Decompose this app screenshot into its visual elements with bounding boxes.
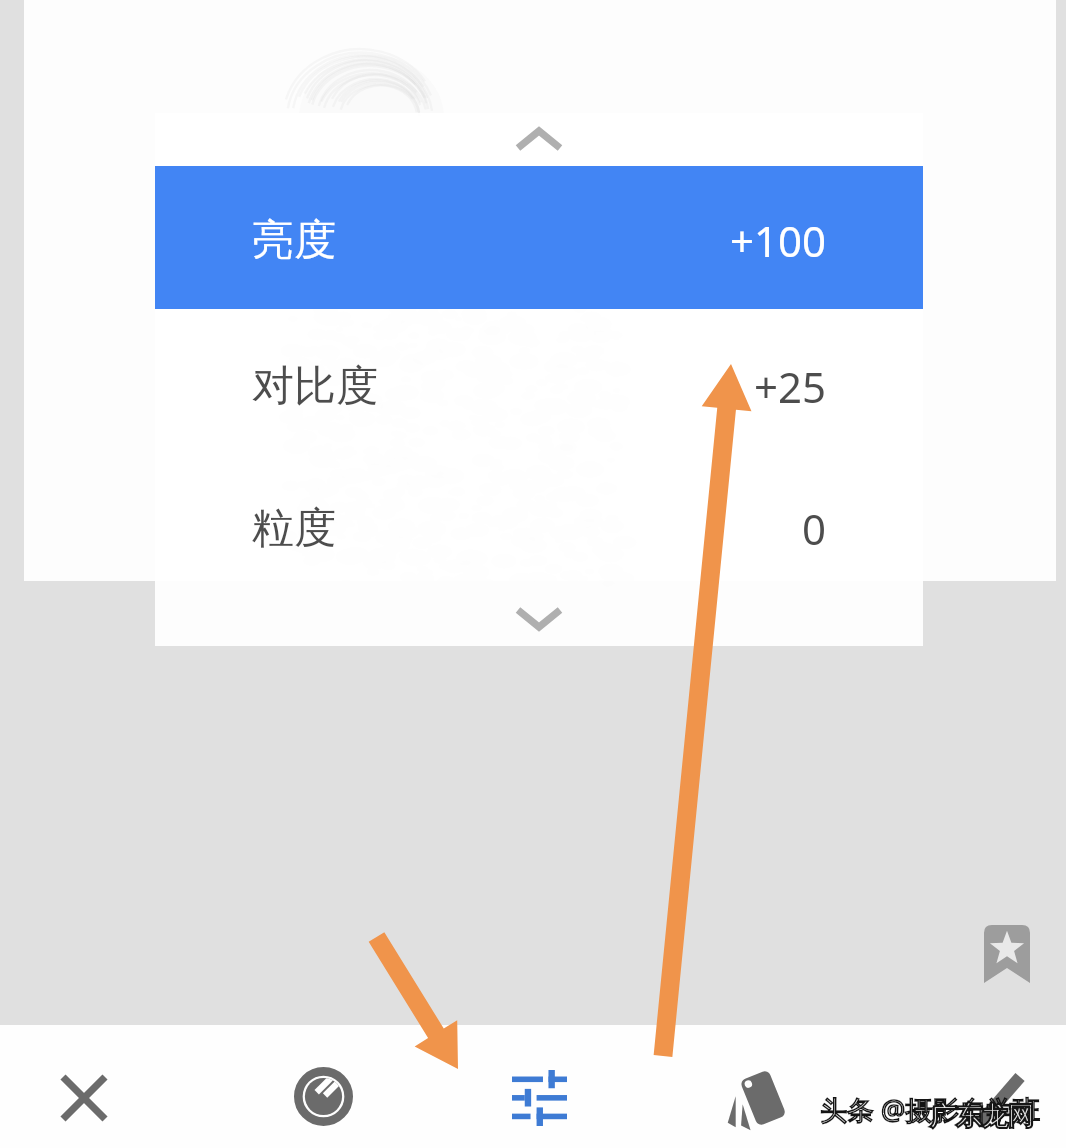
button[interactable] (155, 454, 923, 591)
button[interactable]: Auto adjust (270, 1043, 377, 1148)
staticText: 对比度 (252, 360, 378, 413)
staticText: 头条 @摄影自学班 (820, 1091, 1041, 1128)
button[interactable]: Tune image (488, 1046, 591, 1148)
button[interactable]: Edit (948, 1046, 1052, 1148)
button[interactable] (155, 166, 923, 309)
button[interactable]: Next adjustment (155, 591, 923, 646)
staticText: 粒度 (252, 502, 336, 555)
staticText: 亮度 (252, 214, 336, 267)
button[interactable]: Previous adjustment (155, 113, 923, 166)
staticText: 广东龙网 (930, 1100, 1034, 1133)
staticText: +100 (730, 212, 827, 269)
button[interactable]: Close (39, 1053, 129, 1143)
staticText: 0 (802, 500, 827, 557)
button[interactable] (155, 309, 923, 454)
staticText: 广东龙网 (930, 1100, 1034, 1133)
button[interactable]: Filters (698, 1043, 812, 1148)
staticText: +25 (754, 358, 827, 415)
button[interactable]: Bookmark (984, 925, 1030, 983)
